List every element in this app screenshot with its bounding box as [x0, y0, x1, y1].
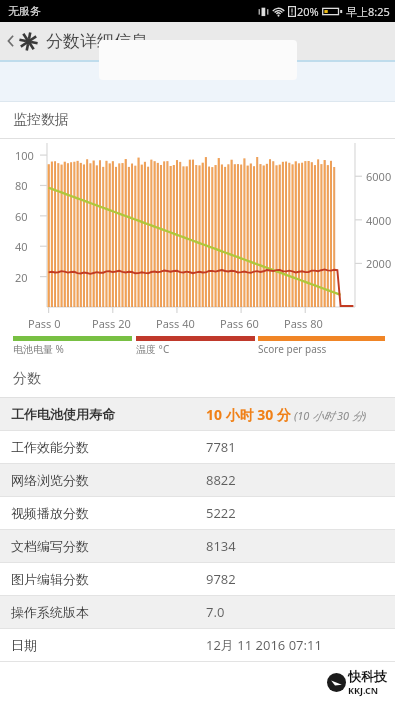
- staticText: Pass 60: [220, 316, 259, 331]
- staticText: 100: [15, 148, 34, 163]
- button[interactable]: 网络浏览分数: [0, 464, 395, 496]
- staticText: 8134: [206, 537, 236, 555]
- button[interactable]: 工作效能分数: [0, 431, 395, 463]
- staticText: 5222: [206, 504, 236, 522]
- button[interactable]: Score per pass: [258, 336, 385, 356]
- staticText: 10 小时 30 分: [206, 405, 291, 424]
- button[interactable]: 图片编辑分数: [0, 563, 395, 595]
- staticText: 20%: [297, 4, 319, 19]
- staticText: KKJ.CN: [348, 684, 379, 696]
- staticText: 视频播放分数: [11, 505, 89, 521]
- staticText: 9782: [206, 570, 236, 588]
- staticText: 20: [15, 270, 28, 285]
- button[interactable]: 操作系统版本: [0, 596, 395, 628]
- staticText: 12月 11 2016 07:11: [206, 636, 322, 654]
- button[interactable]: 温度 °C: [136, 336, 255, 356]
- staticText: 80: [15, 178, 28, 193]
- staticText: 7.0: [206, 603, 225, 621]
- staticText: (10 小时 30 分): [294, 408, 367, 423]
- button[interactable]: 文档编写分数: [0, 530, 395, 562]
- staticText: 无服务: [8, 4, 41, 18]
- other: Back: [4, 31, 17, 51]
- staticText: 40: [15, 239, 28, 254]
- staticText: 7781: [206, 438, 236, 456]
- staticText: 网络浏览分数: [11, 472, 89, 488]
- staticText: 分数详细信息: [46, 31, 148, 52]
- staticText: 工作效能分数: [11, 439, 89, 455]
- staticText: Score per pass: [258, 342, 327, 356]
- staticText: Pass 20: [92, 316, 131, 331]
- staticText: 8822: [206, 471, 236, 489]
- staticText: 图片编辑分数: [11, 571, 89, 587]
- button[interactable]: 日期: [0, 629, 395, 661]
- button[interactable]: 工作电池使用寿命: [0, 398, 395, 430]
- staticText: 监控数据: [13, 111, 69, 129]
- staticText: 分数: [13, 370, 41, 388]
- button[interactable]: 视频播放分数: [0, 497, 395, 529]
- staticText: 文档编写分数: [11, 538, 89, 554]
- staticText: 电池电量 %: [13, 342, 64, 356]
- staticText: 4000: [366, 213, 392, 228]
- staticText: 温度 °C: [136, 342, 170, 356]
- staticText: 2000: [366, 256, 392, 271]
- staticText: 6000: [366, 169, 392, 184]
- staticText: Pass 0: [28, 316, 61, 331]
- staticText: 早上8:25: [346, 4, 390, 19]
- staticText: 60: [15, 209, 28, 224]
- button[interactable]: 电池电量 %: [13, 336, 132, 356]
- staticText: Pass 40: [156, 316, 195, 331]
- button[interactable]: Back: [0, 22, 395, 60]
- staticText: 日期: [11, 637, 37, 653]
- staticText: Pass 80: [284, 316, 323, 331]
- staticText: 操作系统版本: [11, 604, 89, 620]
- staticText: 快科技: [348, 668, 387, 684]
- staticText: 工作电池使用寿命: [11, 406, 115, 422]
